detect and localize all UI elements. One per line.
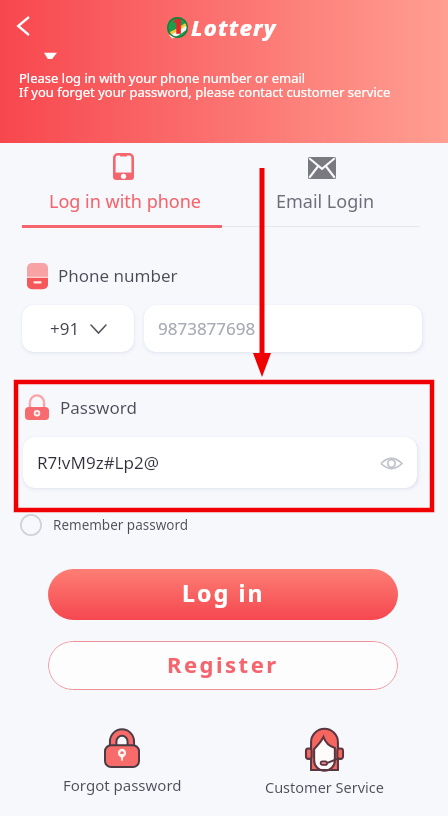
staticText: Password [60,396,137,419]
staticText: Log in with phone [24,189,226,214]
button[interactable]: R7!vM9z#Lp2@ [23,437,417,488]
button[interactable]: Log in [48,569,398,620]
button[interactable]: Log in with phone [22,143,224,235]
staticText: Email Login [224,189,426,214]
staticText: Register [167,649,279,679]
button[interactable]: Register [48,641,398,690]
staticText: +91 [50,317,80,340]
button[interactable]: Remember password [20,512,189,538]
staticText: Remember password [53,516,189,534]
button[interactable]: 9873877698 [144,305,422,352]
staticText: Lottery [191,12,277,42]
staticText: Log in [182,577,265,608]
staticText: Please log in with your phone number or … [19,69,306,87]
staticText: 9873877698 [158,317,256,340]
button[interactable]: Show password [375,447,407,479]
button[interactable]: Back [4,7,42,45]
button[interactable]: Customer Service [244,728,404,797]
button[interactable]: Forgot password [42,728,202,795]
staticText: R7!vM9z#Lp2@ [37,451,159,474]
staticText: If you forget your password, please cont… [19,83,391,101]
staticText: Forgot password [63,775,182,795]
button[interactable]: Email Login [224,143,426,235]
button[interactable]: +91 [22,305,134,352]
staticText: Customer Service [265,777,384,797]
staticText: Phone number [58,264,178,287]
